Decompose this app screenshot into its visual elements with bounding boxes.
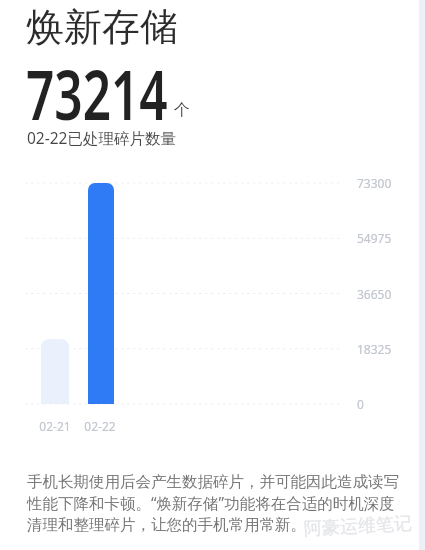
staticText: 73214 <box>26 46 168 140</box>
staticText: 36650 <box>357 286 392 302</box>
staticText: 02-22 <box>84 418 116 434</box>
staticText: 个 <box>174 100 190 120</box>
staticText: 焕新存储 <box>26 3 178 51</box>
staticText: 02-21 <box>39 418 71 434</box>
staticText: 54975 <box>357 230 392 246</box>
staticText: 0 <box>357 396 364 412</box>
staticText: 18325 <box>357 341 392 357</box>
staticText: 73300 <box>357 175 392 191</box>
staticText: 02-22已处理碎片数量 <box>27 127 176 148</box>
staticText: 阿豪运维笔记 <box>303 512 413 541</box>
staticText: 手机长期使用后会产生数据碎片，并可能因此造成读写 性能下降和卡顿。“焕新存储”功… <box>27 472 399 535</box>
